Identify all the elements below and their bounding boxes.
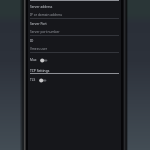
button[interactable]: TLS (28, 75, 121, 85)
staticText: ID (30, 39, 34, 43)
button[interactable]: Server address (28, 2, 121, 19)
button[interactable]: ID (28, 36, 121, 53)
button[interactable]: Mux (28, 55, 121, 65)
button[interactable]: Server Port (28, 19, 121, 36)
staticText: Server Port (30, 22, 47, 26)
staticText: TLS (30, 78, 36, 82)
staticText: Server port number (30, 30, 60, 34)
staticText: Vmess user (30, 47, 48, 51)
staticText: Server address (30, 5, 53, 9)
staticText: Mux (30, 58, 37, 62)
staticText: IP or domain address (30, 13, 63, 17)
staticText: TCP Settings (30, 68, 50, 72)
